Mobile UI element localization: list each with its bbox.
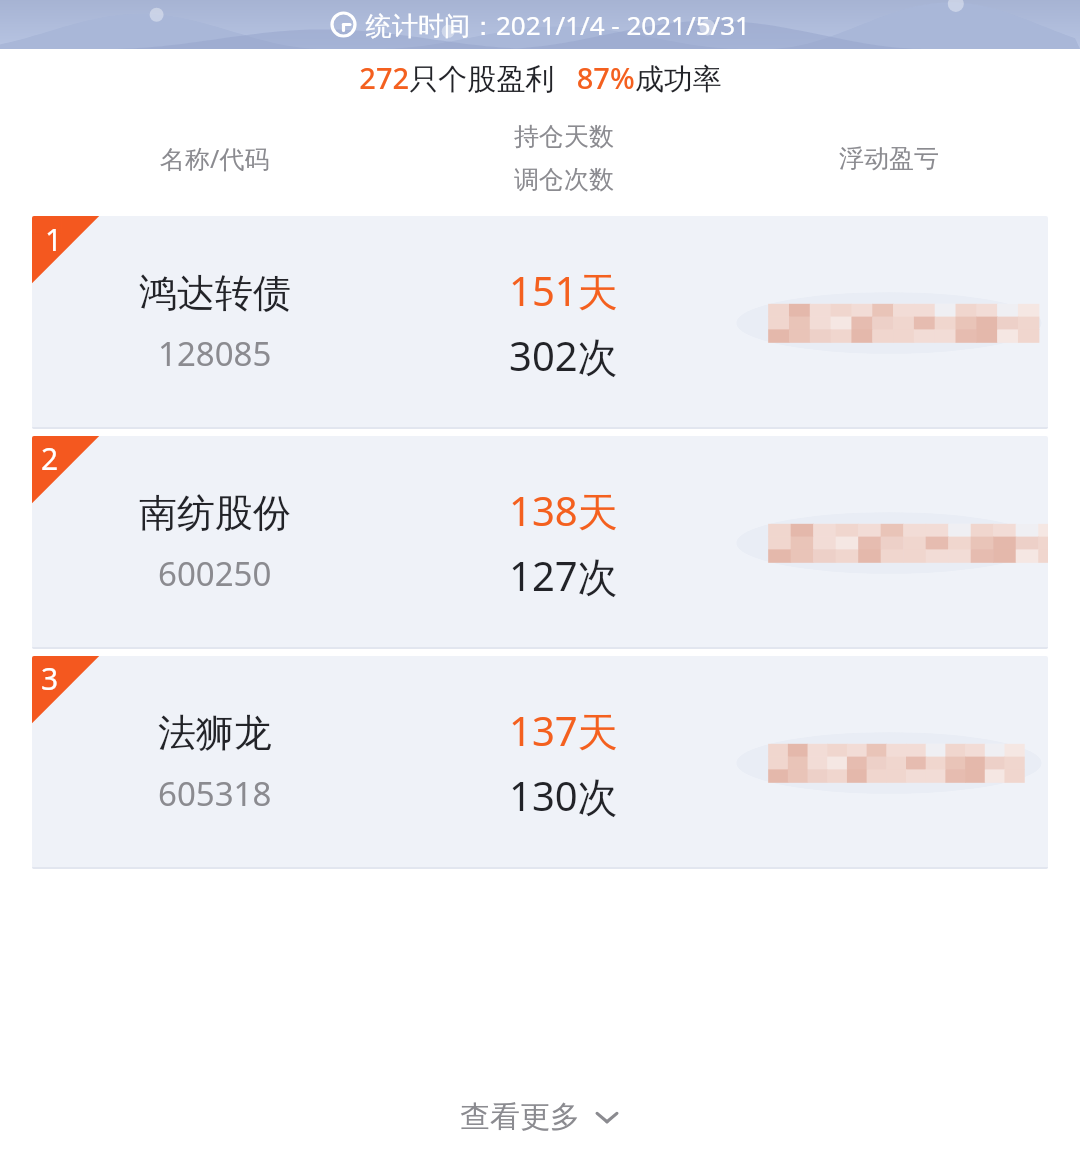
staticText: 130次: [509, 768, 618, 823]
staticText: 查看更多: [460, 1098, 580, 1136]
other: 展开更多: [594, 1104, 620, 1130]
staticText: 127次: [509, 548, 618, 603]
staticText: 统计时间：2021/1/4 - 2021/5/31: [366, 7, 750, 43]
staticText: 鸿达转债: [139, 269, 291, 317]
staticText: 137天: [509, 703, 618, 758]
button[interactable]: 南纺股份: [32, 436, 1048, 649]
staticText: 138天: [509, 483, 618, 538]
staticText: 3: [41, 658, 59, 699]
staticText: 302次: [509, 328, 618, 383]
staticText: 调仓次数: [514, 164, 614, 195]
button[interactable]: 法狮龙: [32, 656, 1048, 869]
staticText: 272只个股盈利 87%成功率: [359, 58, 722, 98]
staticText: 600250: [158, 551, 272, 596]
staticText: 南纺股份: [139, 489, 291, 537]
staticText: 2: [41, 438, 59, 479]
staticText: 128085: [158, 331, 272, 376]
staticText: 605318: [158, 771, 272, 816]
staticText: 持仓天数: [514, 121, 614, 152]
staticText: 151天: [509, 263, 618, 318]
staticText: 法狮龙: [158, 709, 272, 757]
staticText: 1: [45, 219, 63, 260]
button[interactable]: 鸿达转债: [32, 216, 1048, 429]
button[interactable]: 查看更多: [0, 1086, 1080, 1148]
staticText: 名称/代码: [160, 141, 270, 175]
staticText: 浮动盈亏: [839, 143, 939, 174]
